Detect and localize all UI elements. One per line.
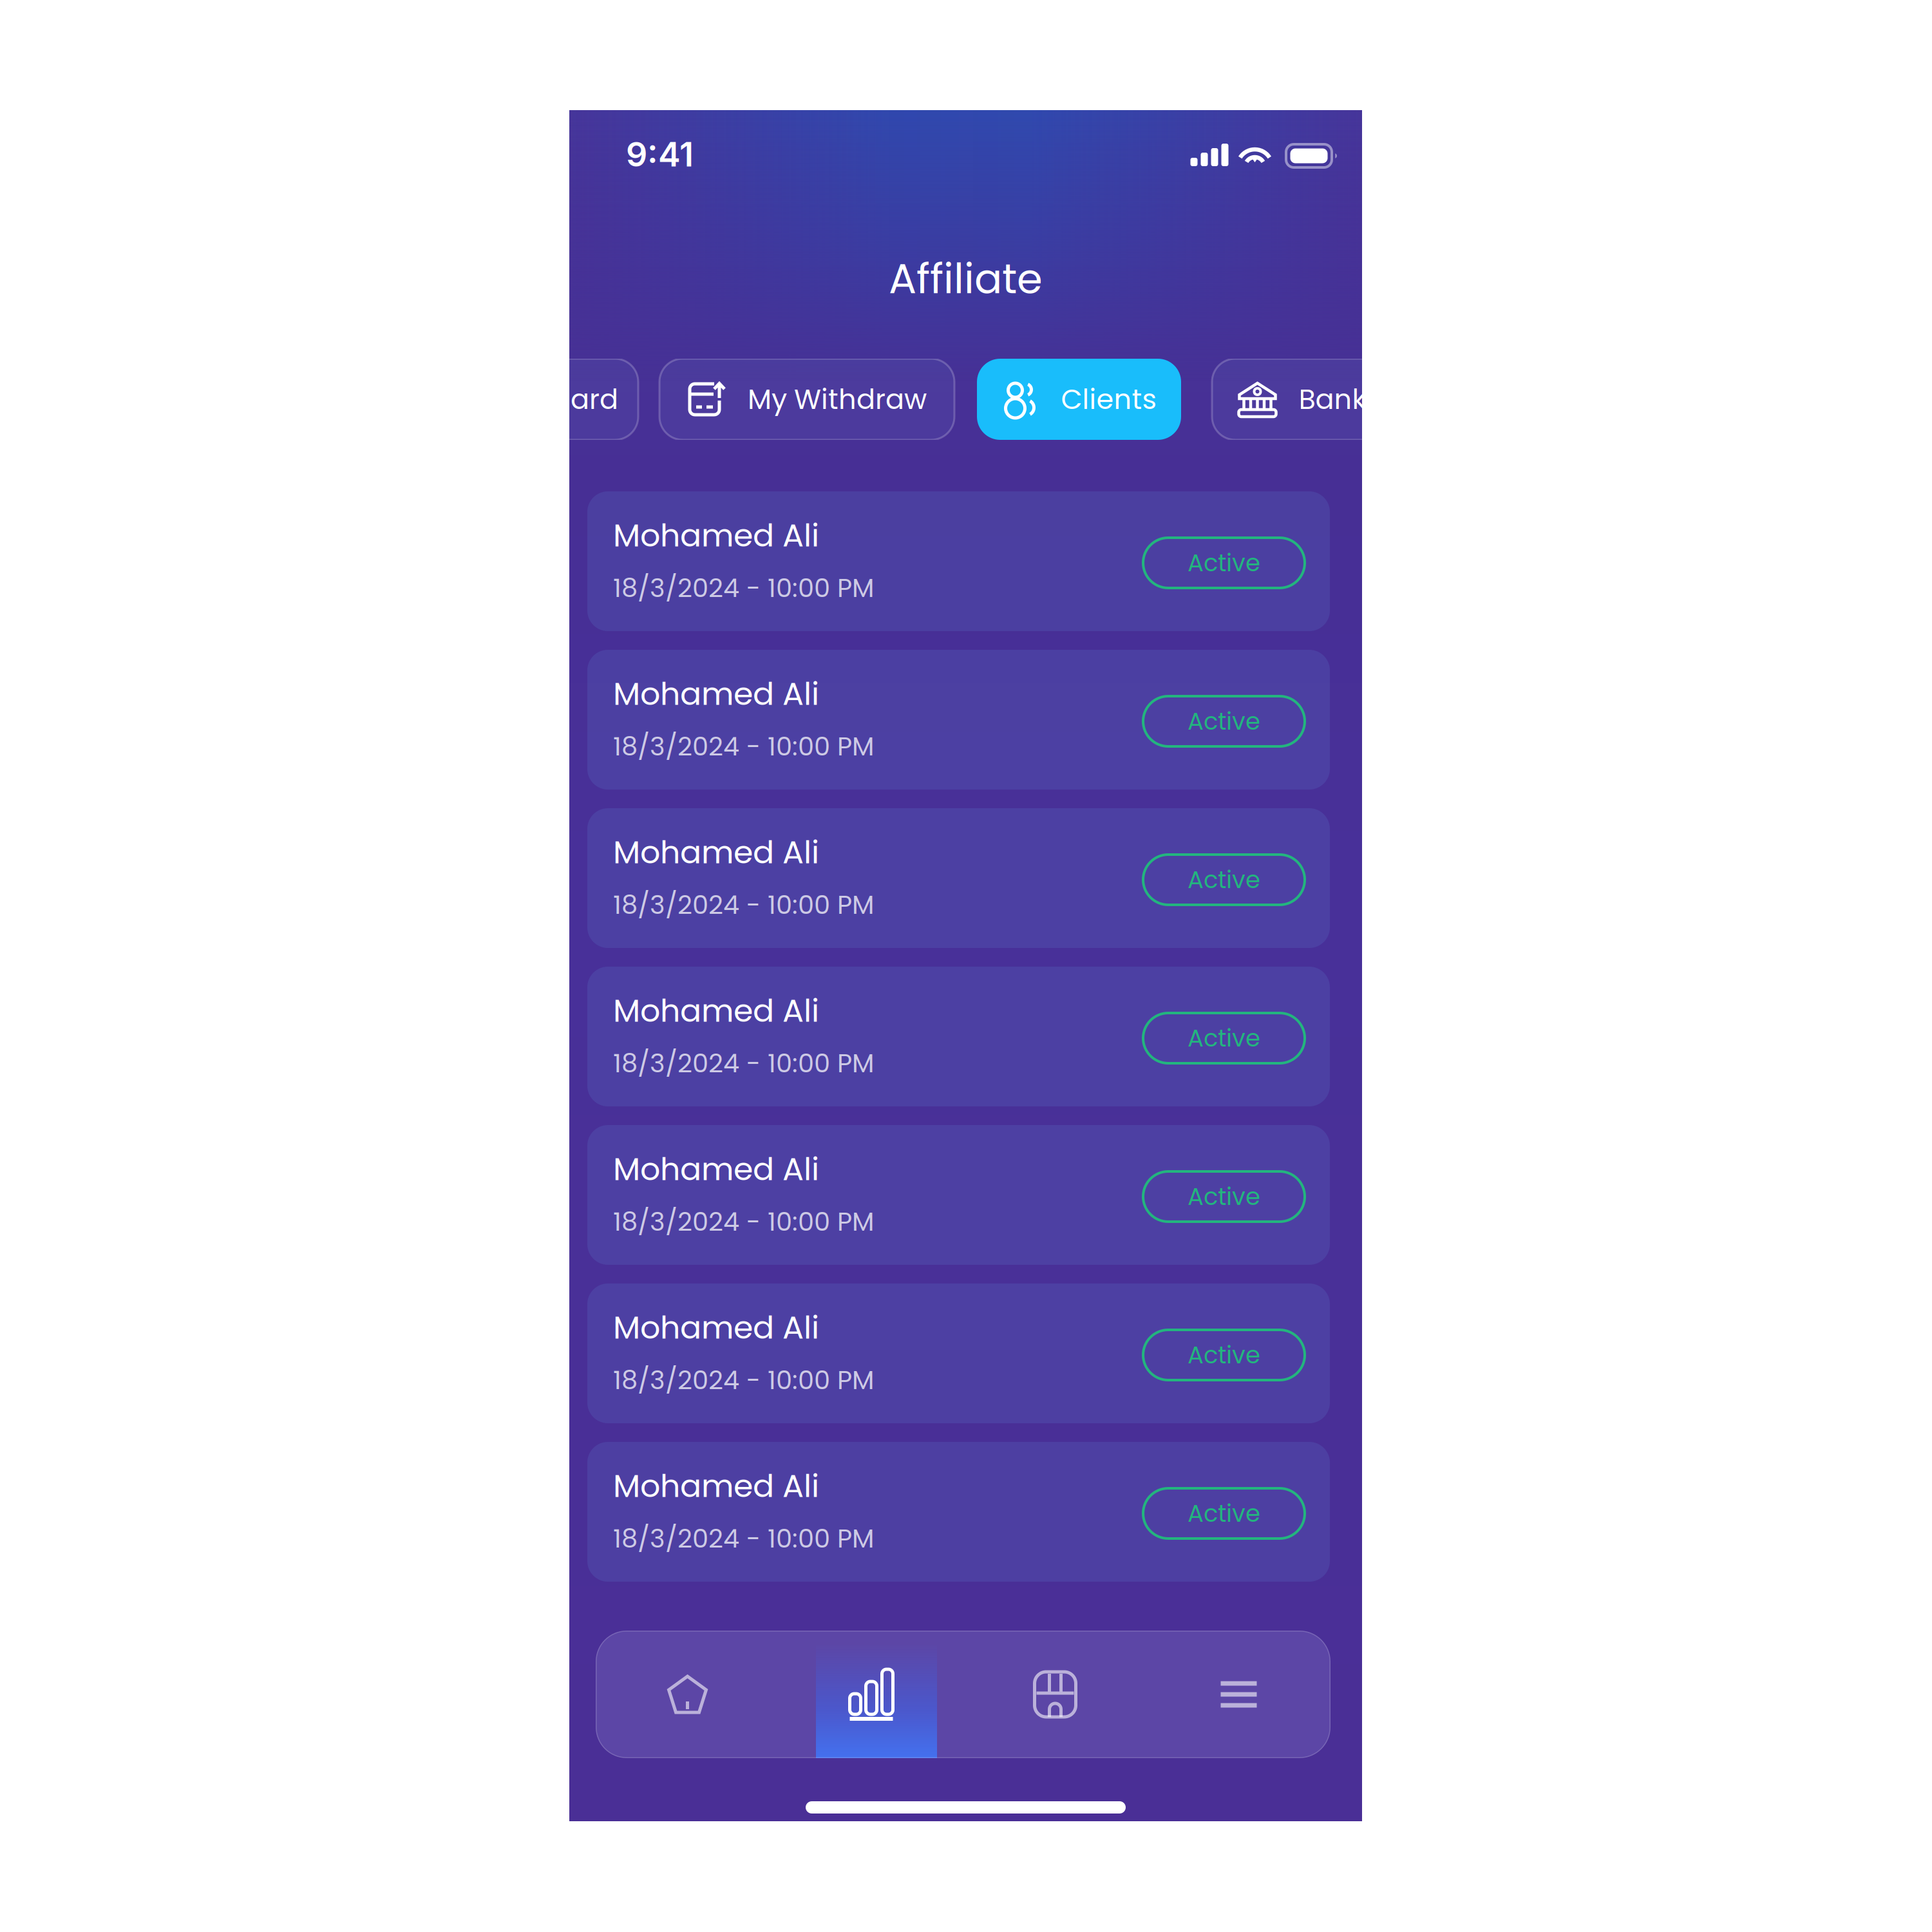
- staticText: Mohamed Ali: [613, 1147, 819, 1191]
- staticText: Active: [1188, 863, 1260, 896]
- staticText: Active: [1188, 546, 1260, 580]
- staticText: 18/3/2024 - 10:00 PM: [613, 728, 874, 764]
- staticText: Bank Account: [1299, 380, 1490, 419]
- button[interactable]: Card: [529, 359, 638, 440]
- staticText: Active: [1188, 1338, 1260, 1372]
- button[interactable]: Mohamed Ali: [587, 1442, 1330, 1582]
- staticText: Active: [1188, 705, 1260, 738]
- staticText: Mohamed Ali: [613, 1305, 819, 1350]
- staticText: Mohamed Ali: [613, 672, 819, 716]
- staticText: 18/3/2024 - 10:00 PM: [613, 1204, 874, 1240]
- button[interactable]: Statistics: [779, 1631, 963, 1758]
- staticText: 18/3/2024 - 10:00 PM: [613, 887, 874, 923]
- staticText: 18/3/2024 - 10:00 PM: [613, 1520, 874, 1557]
- staticText: Mohamed Ali: [613, 830, 819, 874]
- staticText: 18/3/2024 - 10:00 PM: [613, 1362, 874, 1398]
- staticText: My Withdraw: [748, 380, 927, 419]
- staticText: Clients: [1061, 380, 1156, 419]
- staticText: Active: [1188, 1497, 1260, 1530]
- button[interactable]: My Withdraw: [659, 359, 954, 440]
- button[interactable]: Bank Account: [1212, 359, 1515, 440]
- button[interactable]: Mohamed Ali: [587, 967, 1330, 1106]
- staticText: Affiliate: [889, 250, 1043, 308]
- staticText: Card: [549, 380, 618, 419]
- button[interactable]: Mohamed Ali: [587, 650, 1330, 790]
- staticText: Mohamed Ali: [613, 1464, 819, 1508]
- staticText: Active: [1188, 1021, 1260, 1055]
- button[interactable]: Home: [596, 1631, 779, 1758]
- button[interactable]: Mohamed Ali: [587, 1125, 1330, 1265]
- button[interactable]: More: [1147, 1631, 1331, 1758]
- button[interactable]: Clients: [977, 359, 1181, 440]
- staticText: Mohamed Ali: [613, 989, 819, 1033]
- button[interactable]: Store: [963, 1631, 1147, 1758]
- button[interactable]: Mohamed Ali: [587, 808, 1330, 948]
- button[interactable]: Mohamed Ali: [587, 1283, 1330, 1423]
- button[interactable]: Mohamed Ali: [587, 491, 1330, 631]
- staticText: 9:41: [626, 134, 694, 174]
- staticText: Mohamed Ali: [613, 513, 819, 557]
- staticText: 18/3/2024 - 10:00 PM: [613, 1045, 874, 1081]
- staticText: 18/3/2024 - 10:00 PM: [613, 570, 874, 606]
- staticText: Active: [1188, 1180, 1260, 1213]
